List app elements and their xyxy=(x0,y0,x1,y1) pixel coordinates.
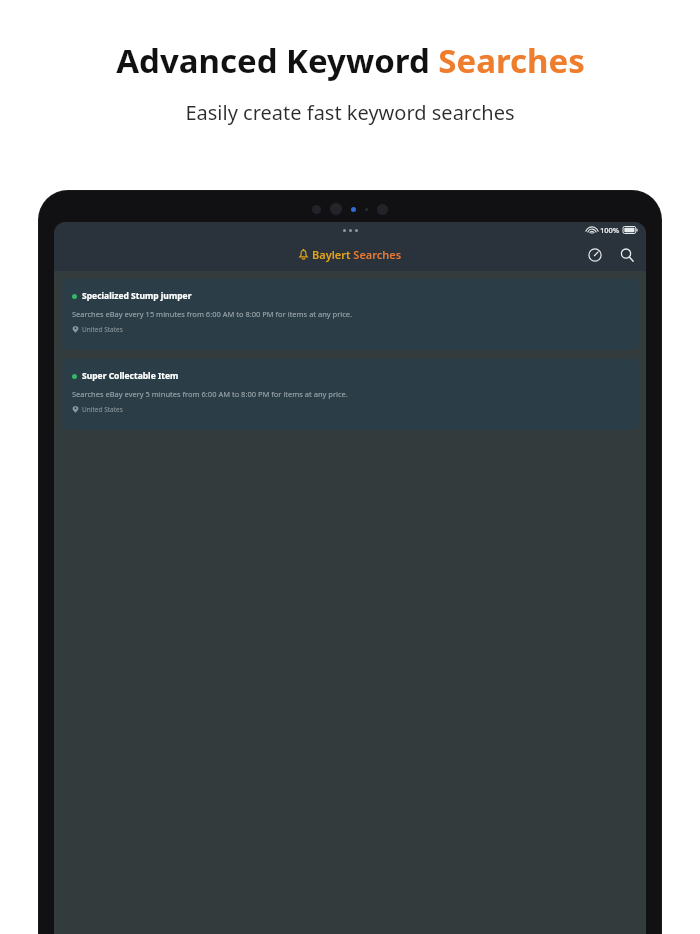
staticText: United States xyxy=(82,325,123,334)
button[interactable]: Super Collectable Item xyxy=(61,359,639,430)
staticText: Specialized Stump jumper xyxy=(82,290,192,302)
staticText: United States xyxy=(82,405,123,414)
staticText: Searches eBay every 5 minutes from 6:00 … xyxy=(72,389,348,399)
staticText: 100% xyxy=(600,225,620,235)
button[interactable]: Specialized Stump jumper xyxy=(61,279,639,350)
staticText: Baylert Searches xyxy=(312,247,402,262)
staticText: Searches eBay every 15 minutes from 6:00… xyxy=(72,309,353,319)
staticText: Advanced Keyword Searches xyxy=(116,38,585,83)
staticText: Easily create fast keyword searches xyxy=(185,99,515,126)
button[interactable]: Search xyxy=(614,242,640,268)
staticText: Super Collectable Item xyxy=(82,370,179,382)
button[interactable]: Activity xyxy=(582,242,608,268)
button[interactable]: Baylert Searches xyxy=(298,247,402,262)
